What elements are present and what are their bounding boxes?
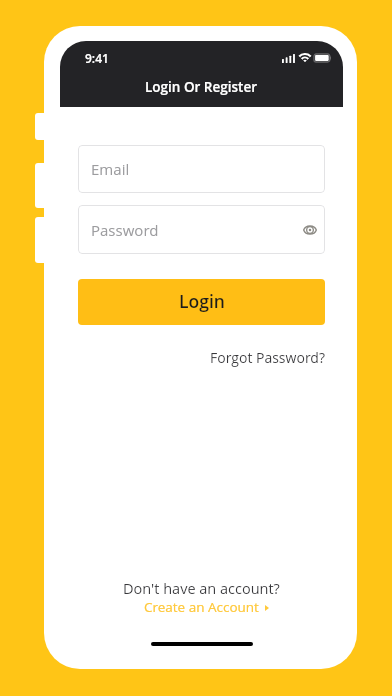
button[interactable]: Show password — [300, 220, 320, 240]
button[interactable]: Email — [78, 145, 325, 193]
button[interactable]: Login — [78, 279, 325, 325]
staticText: Password — [91, 220, 159, 240]
button[interactable]: Password — [78, 205, 325, 254]
button[interactable]: Don't have an account? — [60, 578, 343, 599]
button[interactable]: Create an Account — [60, 596, 343, 617]
staticText: Create an Account — [144, 598, 259, 616]
button[interactable]: Forgot Password? — [210, 348, 325, 367]
staticText: 9:41 — [85, 50, 109, 66]
staticText: Login — [179, 289, 225, 313]
staticText: Login Or Register — [145, 78, 258, 96]
staticText: Don't have an account? — [123, 579, 280, 599]
staticText: Email — [91, 159, 130, 179]
